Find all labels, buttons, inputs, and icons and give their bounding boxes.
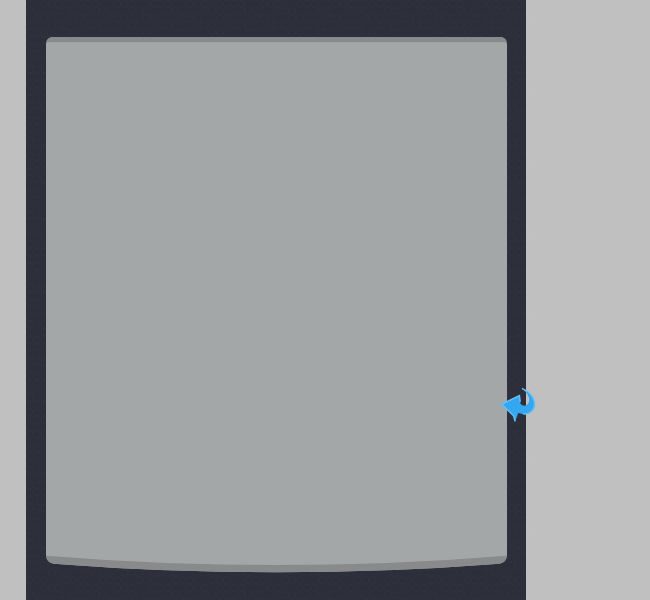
button[interactable] <box>0 0 650 600</box>
button[interactable]: Back <box>496 382 542 428</box>
